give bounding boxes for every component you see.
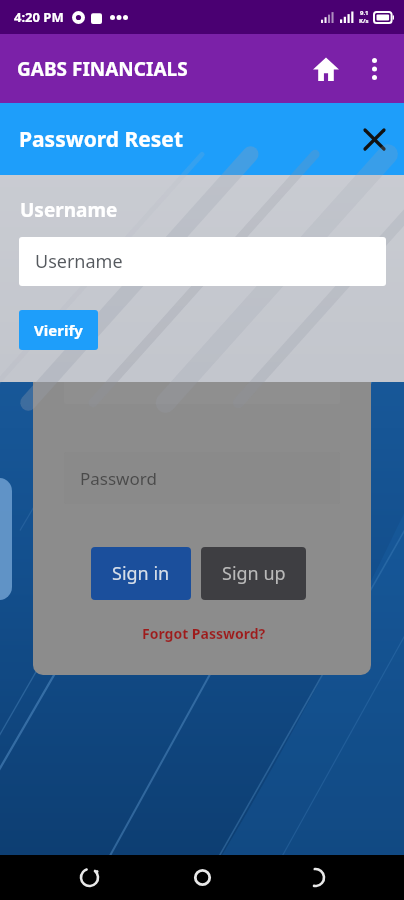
staticText: GABS FINANCIALS	[17, 56, 188, 82]
staticText: Password Reset	[19, 125, 184, 154]
button[interactable]: Sign up	[201, 547, 306, 600]
button[interactable]: Password	[64, 452, 340, 504]
staticText: 4:20 PM	[14, 8, 64, 26]
staticText: Vierify	[34, 320, 83, 340]
button[interactable]: Home	[304, 47, 348, 91]
button[interactable]: Back	[291, 855, 339, 900]
button[interactable]: Close	[352, 117, 396, 161]
staticText: Password	[80, 467, 157, 490]
staticText: K/s	[359, 17, 369, 25]
staticText: Username	[20, 197, 118, 223]
button[interactable]: Vierify	[19, 310, 98, 350]
button[interactable]: More options	[354, 49, 394, 89]
staticText: Forgot Password?	[142, 624, 266, 643]
button[interactable]: Username	[19, 237, 386, 286]
staticText: 9.1	[360, 9, 369, 17]
staticText: Username	[35, 249, 123, 274]
button[interactable]: Forgot Password?	[129, 620, 279, 646]
button[interactable]: Sign in	[91, 547, 191, 600]
button[interactable]: Recents	[65, 855, 113, 900]
staticText: Sign up	[222, 561, 286, 586]
button[interactable]: Home	[178, 855, 226, 900]
staticText: Sign in	[112, 561, 170, 586]
